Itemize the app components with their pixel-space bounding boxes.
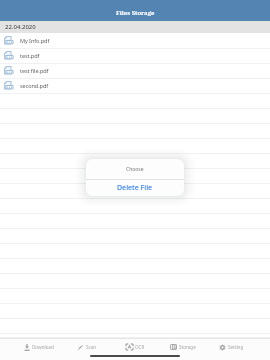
staticText: second.pdf (20, 82, 49, 90)
staticText: Setting (228, 344, 244, 350)
button[interactable]: Setting (207, 339, 255, 357)
button[interactable]: test file.pdf (0, 64, 270, 79)
button[interactable]: Scan (63, 339, 111, 357)
button[interactable]: My Info.pdf (0, 34, 270, 49)
staticText: My Info.pdf (20, 37, 50, 45)
staticText: 22.04.2020 (5, 23, 36, 31)
button[interactable]: test.pdf (0, 49, 270, 64)
staticText: Files Storage (116, 8, 155, 16)
staticText: test.pdf (20, 52, 40, 60)
button[interactable]: Delete File (86, 180, 184, 196)
staticText: OCR (135, 344, 145, 350)
staticText: Choose (126, 166, 144, 173)
button[interactable]: OCR (111, 339, 159, 357)
button[interactable]: second.pdf (0, 79, 270, 94)
staticText: Download (32, 344, 54, 350)
button[interactable]: Storage (159, 339, 207, 357)
staticText: Storage (179, 344, 196, 350)
staticText: Delete File (117, 183, 153, 193)
staticText: Scan (86, 344, 97, 350)
button[interactable]: Download (15, 339, 63, 357)
staticText: test file.pdf (20, 67, 49, 75)
